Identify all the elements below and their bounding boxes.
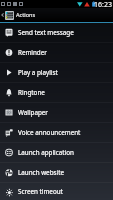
staticText: Send text message xyxy=(18,28,74,37)
staticText: 16:23 xyxy=(94,0,112,8)
staticText: Launch application xyxy=(18,148,74,157)
button[interactable]: Ringtone xyxy=(0,83,113,102)
other: Navigate up xyxy=(0,11,5,19)
staticText: Play a playlist xyxy=(18,68,58,77)
staticText: Reminder xyxy=(18,48,47,57)
staticText: Ringtone xyxy=(18,88,45,97)
button[interactable]: Navigate up xyxy=(0,8,113,22)
button[interactable]: Launch website xyxy=(0,163,113,182)
staticText: Voice announcement xyxy=(18,128,81,137)
button[interactable]: Reminder xyxy=(0,43,113,62)
staticText: Screen timeout xyxy=(18,187,63,196)
button[interactable]: Screen timeout xyxy=(0,183,113,200)
button[interactable]: Launch application xyxy=(0,143,113,162)
button[interactable]: Send text message xyxy=(0,23,113,42)
staticText: Wallpaper xyxy=(18,108,48,117)
button[interactable]: Wallpaper xyxy=(0,103,113,122)
staticText: Actions xyxy=(16,11,36,19)
staticText: Launch website xyxy=(18,168,65,177)
button[interactable]: Play a playlist xyxy=(0,63,113,82)
button[interactable]: Voice announcement xyxy=(0,123,113,142)
